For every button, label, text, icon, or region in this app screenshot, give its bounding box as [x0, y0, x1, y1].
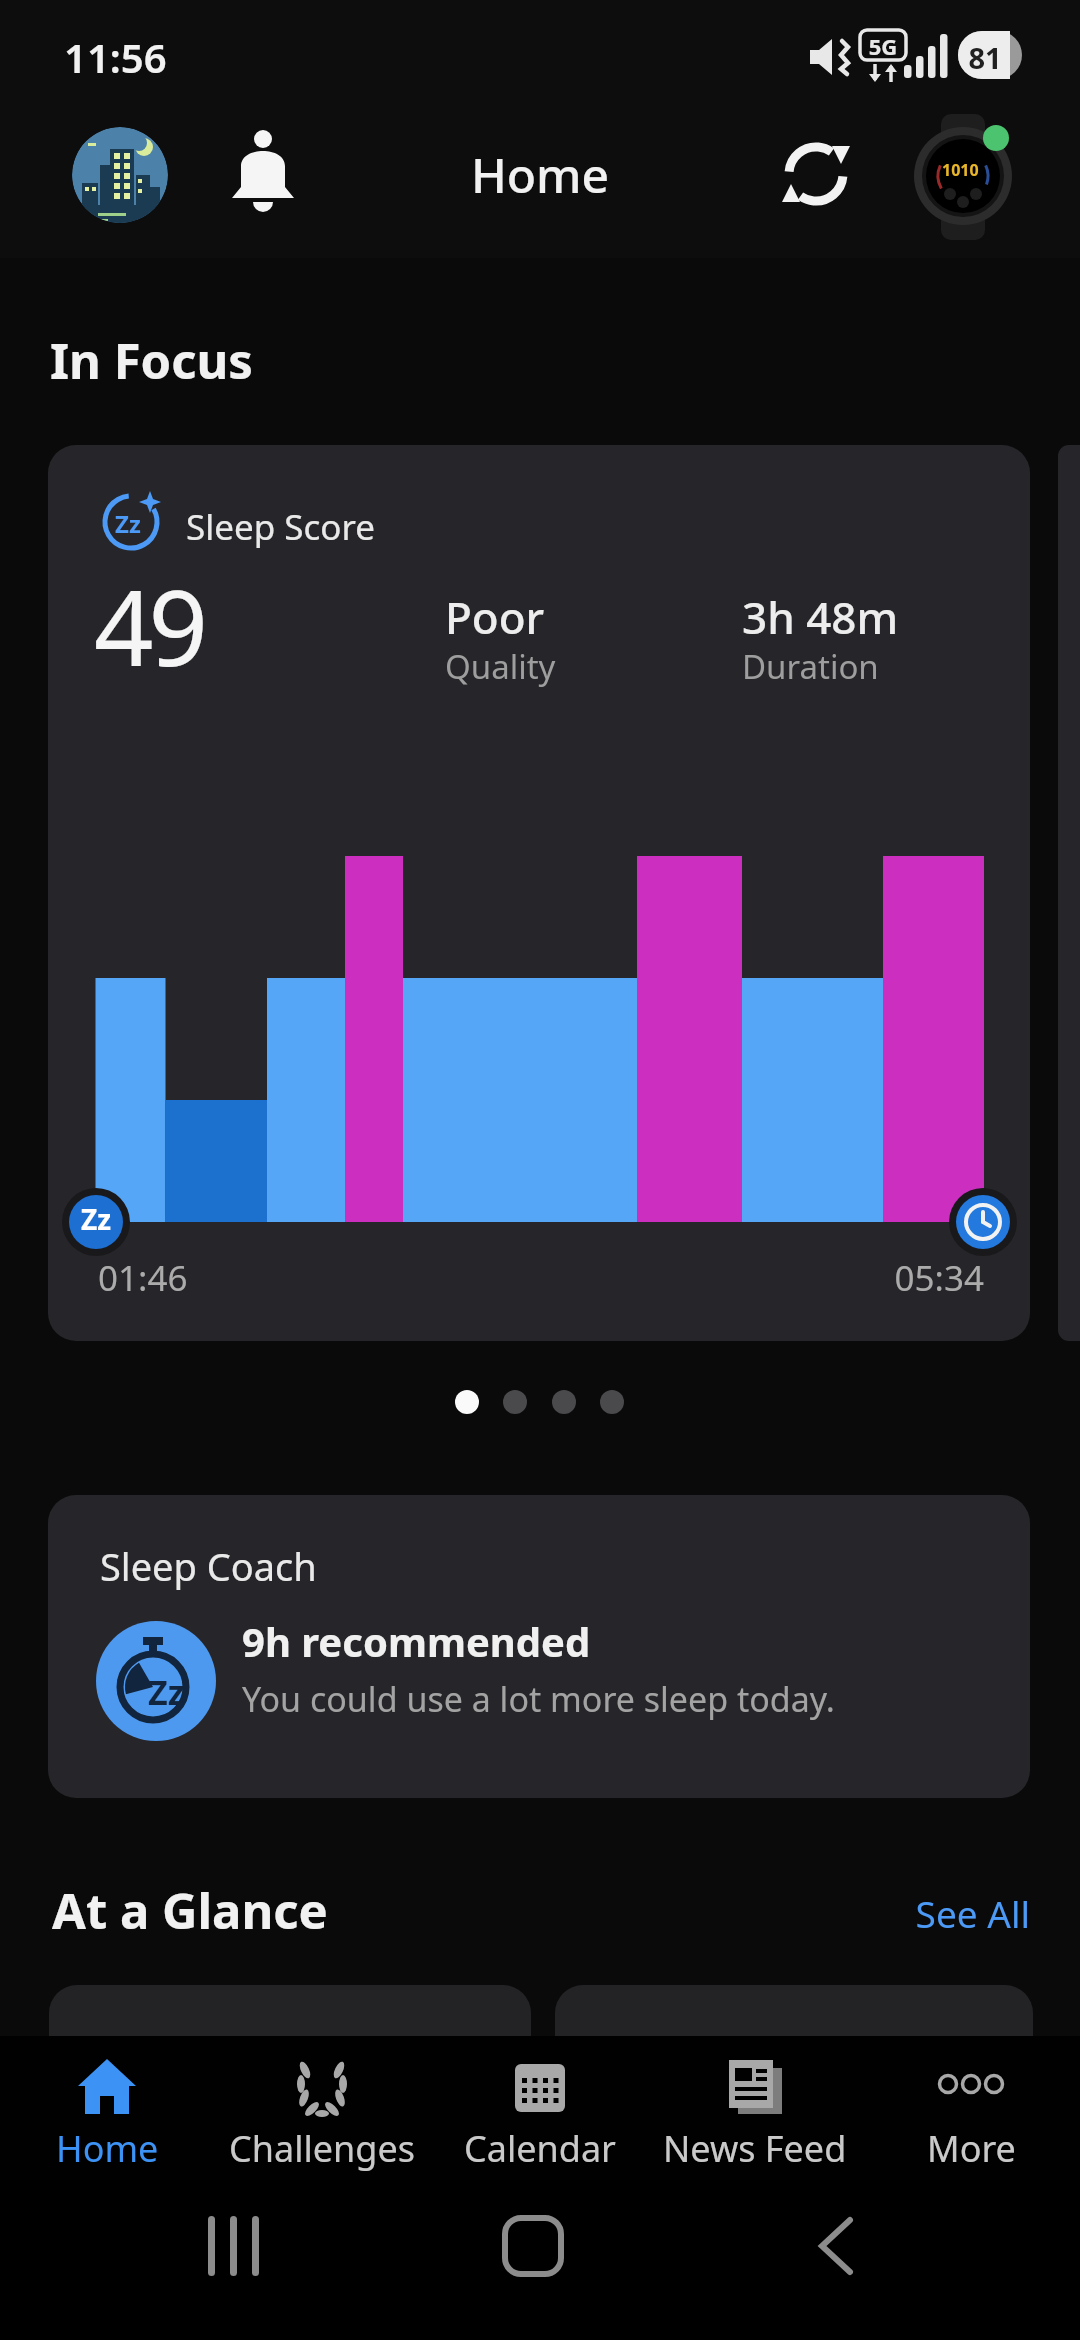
staticText: Poor: [445, 587, 545, 647]
staticText: At a Glance: [52, 1877, 328, 1944]
staticText: Challenges: [229, 2124, 416, 2173]
staticText: 1010: [942, 159, 979, 181]
button[interactable]: Zz: [48, 445, 1030, 1341]
button[interactable]: News Feed: [648, 2036, 862, 2180]
staticText: 9h recommended: [242, 1614, 591, 1668]
button[interactable]: Challenges: [215, 2036, 429, 2180]
button[interactable]: 1010: [898, 112, 1028, 242]
staticText: You could use a lot more sleep today.: [242, 1676, 835, 1722]
button[interactable]: Home: [0, 2036, 214, 2180]
button[interactable]: [226, 128, 300, 220]
button[interactable]: Sleep Coach: [48, 1495, 1030, 1798]
button[interactable]: [72, 127, 168, 223]
staticText: Home: [0, 142, 1080, 207]
staticText: Sleep Coach: [100, 1540, 317, 1592]
button[interactable]: [555, 1985, 1033, 2036]
staticText: 11:56: [64, 30, 167, 84]
staticText: Quality: [445, 644, 556, 689]
staticText: In Focus: [50, 327, 253, 394]
staticText: News Feed: [663, 2124, 847, 2173]
staticText: 01:46: [98, 1254, 188, 1302]
staticText: Duration: [742, 644, 879, 689]
staticText: Zz: [115, 507, 141, 540]
button[interactable]: See All: [890, 1888, 1030, 1944]
staticText: 05:34: [824, 1254, 984, 1302]
staticText: Calendar: [464, 2124, 616, 2173]
button[interactable]: [49, 1985, 531, 2036]
staticText: Zz: [76, 1200, 116, 1238]
staticText: Sleep Score: [186, 503, 376, 551]
staticText: 5G: [860, 31, 906, 61]
staticText: 3h 48m: [742, 587, 899, 647]
staticText: More: [927, 2124, 1016, 2173]
staticText: 81: [958, 38, 1012, 77]
staticText: 49: [94, 555, 203, 697]
button[interactable]: More: [864, 2036, 1078, 2180]
staticText: Zz: [148, 1669, 185, 1715]
staticText: See All: [890, 1888, 1030, 1938]
button[interactable]: Calendar: [433, 2036, 647, 2180]
staticText: Home: [56, 2124, 159, 2173]
button[interactable]: [780, 138, 852, 210]
